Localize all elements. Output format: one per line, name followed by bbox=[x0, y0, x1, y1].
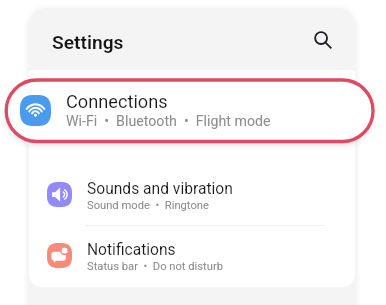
button[interactable]: Connections bbox=[6, 79, 373, 141]
staticText: Notifications bbox=[87, 241, 176, 259]
staticText: Settings bbox=[52, 31, 124, 54]
button[interactable]: Notifications bbox=[40, 229, 345, 281]
staticText: Connections bbox=[66, 91, 168, 112]
staticText: Status bar • Do not disturb bbox=[87, 260, 223, 273]
button[interactable]: Search bbox=[304, 24, 334, 54]
staticText: Sound mode • Ringtone bbox=[87, 199, 209, 212]
staticText: Wi-Fi • Bluetooth • Flight mode bbox=[66, 113, 271, 130]
button[interactable]: Sounds and vibration bbox=[40, 168, 345, 220]
staticText: Sounds and vibration bbox=[87, 180, 233, 198]
